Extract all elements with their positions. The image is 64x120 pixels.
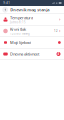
staticText: 120/80 mmHg: [10, 32, 30, 35]
button[interactable]: Moji lijekovi: [0, 37, 64, 48]
staticText: Dnevna aktivnost: [10, 51, 39, 57]
staticText: 4: [57, 52, 59, 56]
button[interactable]: Back: [1, 6, 9, 13]
staticText: 12: [54, 29, 58, 33]
staticText: 9:41: [3, 1, 10, 5]
staticText: Moji lijekovi: [10, 40, 31, 45]
staticText: Temperatura: [10, 15, 33, 20]
staticText: Krvni tlak: [10, 27, 26, 32]
button[interactable]: Dnevna aktivnost: [0, 48, 64, 60]
staticText: Dnevnik mog stanja: [10, 7, 49, 12]
staticText: Jutros 8:15: [10, 20, 26, 24]
button[interactable]: Krvni tlak: [0, 25, 64, 37]
button[interactable]: Temperatura: [0, 14, 64, 25]
